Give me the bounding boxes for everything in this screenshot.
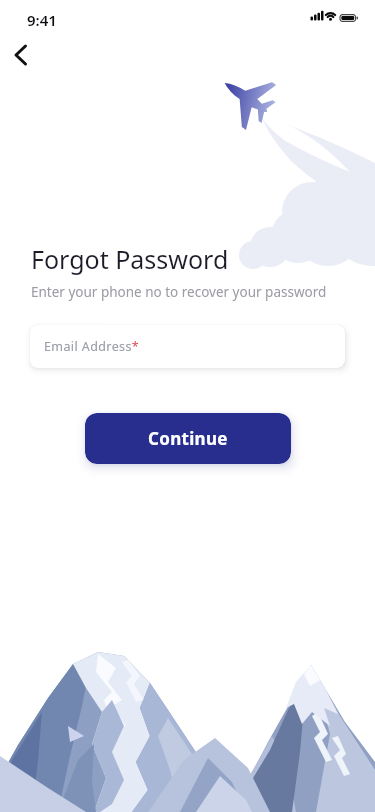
button[interactable]: Continue — [85, 413, 291, 464]
button[interactable]: Email Address* — [30, 325, 345, 368]
staticText: 9:41 — [27, 10, 57, 30]
staticText: Continue — [148, 427, 228, 450]
staticText: Email Address* — [44, 338, 140, 355]
staticText: Enter your phone no to recover your pass… — [31, 283, 327, 301]
staticText: Forgot Password — [31, 242, 229, 276]
button[interactable] — [6, 40, 42, 76]
